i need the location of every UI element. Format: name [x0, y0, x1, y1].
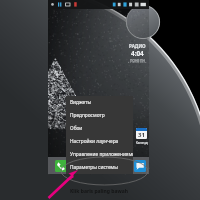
staticText: Klik baris paling bawah	[70, 188, 128, 195]
button[interactable]: Управление приложениями	[66, 148, 133, 161]
staticText: 4:04	[131, 49, 144, 58]
button[interactable]: Messaging	[134, 160, 146, 172]
button[interactable]: Настройки лаунчера	[66, 135, 133, 148]
staticText: ПОНЕ ПН	[130, 58, 145, 62]
staticText: Календарь	[136, 141, 148, 145]
button[interactable]: Обои	[66, 122, 133, 135]
button[interactable]: Phone	[55, 160, 67, 172]
button[interactable]: Параметры системы	[66, 161, 133, 174]
staticText: Настройки лаунчера	[70, 138, 119, 145]
staticText: Управление приложениями	[70, 151, 133, 158]
button[interactable]: Предпросмотр	[66, 109, 133, 122]
button[interactable]: Виджеты	[66, 96, 133, 109]
staticText: Обои	[70, 125, 83, 132]
button[interactable]: Calendar	[136, 128, 148, 145]
staticText: 31	[138, 131, 145, 139]
staticText: Предпросмотр	[70, 112, 105, 119]
staticText: Параметры системы	[70, 164, 118, 171]
staticText: Виджеты	[70, 99, 92, 106]
button[interactable]: Radio clock widget	[125, 43, 149, 63]
staticText: РАДИО	[129, 43, 146, 49]
staticText: 16 ИЮЛ 2012	[128, 62, 147, 63]
